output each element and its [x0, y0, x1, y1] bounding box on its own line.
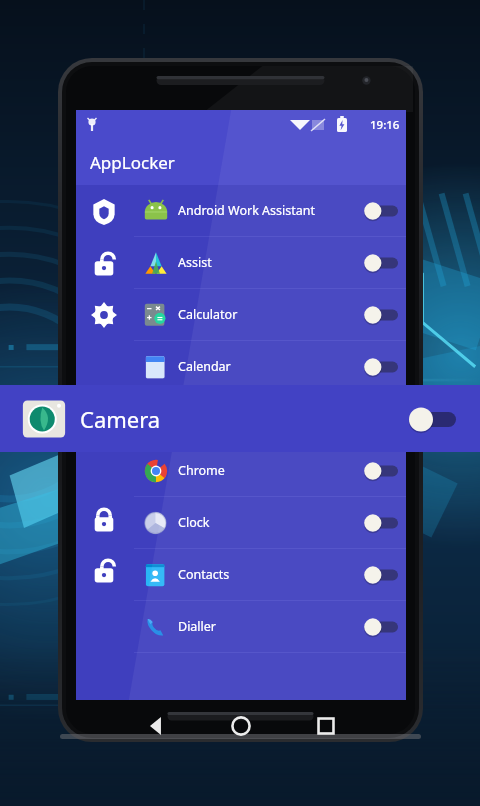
staticText: Camera [80, 404, 161, 434]
button[interactable]: Camera [134, 393, 406, 444]
button[interactable]: Android Work Assistant [134, 185, 406, 236]
button[interactable]: Camera [0, 385, 480, 452]
staticText: AppLocker [90, 151, 175, 174]
button[interactable]: Toggle lock for Android Work Assistant [354, 185, 406, 236]
button[interactable]: Toggle lock for Clock [354, 497, 406, 548]
button[interactable]: Clock [134, 497, 406, 548]
button[interactable]: Toggle lock for Contacts [354, 549, 406, 600]
button[interactable]: Chrome [134, 445, 406, 496]
button[interactable]: Toggle lock for Dialler [354, 601, 406, 652]
button[interactable]: Toggle lock for Calendar [354, 341, 406, 392]
staticText: Android Work Assistant [178, 202, 354, 219]
button[interactable]: Toggle lock for Camera [398, 396, 464, 442]
button[interactable]: Dialler [134, 601, 406, 652]
button[interactable]: Toggle lock for Chrome [354, 445, 406, 496]
staticText: Assist [178, 254, 354, 271]
staticText: 19:16 [370, 117, 400, 133]
staticText: Dialler [178, 618, 354, 635]
button[interactable]: Toggle lock for Assist [354, 237, 406, 288]
staticText: Chrome [178, 462, 354, 479]
button[interactable]: Calendar [134, 341, 406, 392]
button[interactable]: Calculator [134, 289, 406, 340]
button[interactable]: Contacts [134, 549, 406, 600]
button[interactable]: Toggle lock for Calculator [354, 289, 406, 340]
staticText: Clock [178, 514, 354, 531]
staticText: Calendar [178, 358, 354, 375]
staticText: Calculator [178, 306, 354, 323]
staticText: Contacts [178, 566, 354, 583]
button[interactable]: Assist [134, 237, 406, 288]
